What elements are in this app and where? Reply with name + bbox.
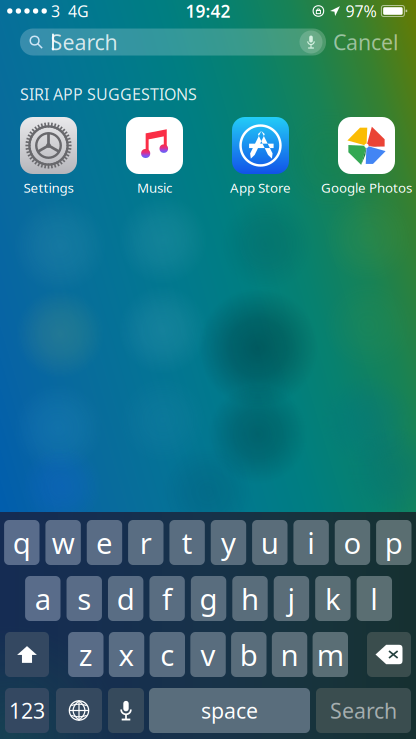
button[interactable]: v <box>190 632 226 677</box>
button[interactable]: 123 <box>5 688 49 733</box>
staticText: i <box>307 523 315 562</box>
staticText: Cancel <box>333 28 399 56</box>
staticText: n <box>281 635 299 674</box>
staticText: q <box>13 523 31 562</box>
staticText: s <box>77 579 91 618</box>
button[interactable]: y <box>211 520 246 565</box>
button[interactable]: x <box>109 632 144 677</box>
button[interactable]: n <box>272 632 307 677</box>
staticText: 19:42 <box>185 0 230 22</box>
staticText: Music <box>137 179 172 196</box>
staticText: z <box>79 635 93 674</box>
button[interactable]: i <box>293 520 329 565</box>
button[interactable]: h <box>232 576 268 621</box>
button[interactable]: Search <box>316 688 411 733</box>
button[interactable] <box>367 632 411 677</box>
button[interactable]: j <box>274 576 309 621</box>
staticText: Settings <box>23 179 73 196</box>
staticText: 4G <box>60 0 89 22</box>
button[interactable] <box>56 688 102 733</box>
staticText: Google Photos <box>321 179 412 196</box>
staticText: w <box>52 523 75 562</box>
button[interactable]: p <box>376 520 411 565</box>
staticText: 97% <box>345 0 376 22</box>
staticText: m <box>317 635 344 674</box>
staticText: e <box>96 523 113 562</box>
staticText: u <box>261 523 279 562</box>
staticText: h <box>241 579 259 618</box>
staticText: k <box>325 579 341 618</box>
staticText: a <box>35 579 51 618</box>
button[interactable]: q <box>4 520 39 565</box>
button[interactable]: Google Photos <box>306 117 416 209</box>
button[interactable]: a <box>25 576 60 621</box>
staticText: g <box>200 579 218 618</box>
button[interactable] <box>108 688 144 733</box>
button[interactable]: b <box>231 632 266 677</box>
staticText: space <box>201 696 258 725</box>
button[interactable]: Switch keyboard <box>56 688 102 733</box>
staticText: Search <box>330 696 397 725</box>
staticText: SIRI APP SUGGESTIONS <box>20 83 197 105</box>
button[interactable]: s <box>66 576 102 621</box>
staticText: d <box>117 579 135 618</box>
staticText: p <box>385 523 403 562</box>
button[interactable]: c <box>150 632 185 677</box>
button[interactable]: Dictate <box>108 688 144 733</box>
button[interactable]: f <box>149 576 185 621</box>
button[interactable]: App Store <box>200 117 320 209</box>
staticText: j <box>287 579 295 618</box>
staticText: x <box>118 635 134 674</box>
staticText: b <box>240 635 258 674</box>
button[interactable]: Cancel <box>333 28 399 55</box>
button[interactable]: Settings <box>0 117 108 209</box>
staticText: App Store <box>230 179 291 196</box>
staticText: r <box>140 523 152 562</box>
button[interactable]: u <box>252 520 287 565</box>
staticText: 3 <box>47 0 60 22</box>
button[interactable]: 123 <box>5 688 49 733</box>
button[interactable]: t <box>169 520 205 565</box>
button[interactable]: w <box>45 520 81 565</box>
button[interactable]: z <box>68 632 103 677</box>
staticText: 123 <box>9 696 45 725</box>
button[interactable]: o <box>335 520 370 565</box>
staticText: y <box>221 523 236 562</box>
button[interactable] <box>5 632 49 677</box>
staticText: c <box>160 635 174 674</box>
staticText: Search <box>50 28 117 56</box>
staticText: v <box>201 635 216 674</box>
button[interactable]: e <box>87 520 122 565</box>
button[interactable]: l <box>357 576 392 621</box>
button[interactable]: k <box>315 576 351 621</box>
button[interactable]: space <box>149 688 310 733</box>
button[interactable]: m <box>313 632 348 677</box>
button[interactable]: r <box>128 520 163 565</box>
staticText: t <box>182 523 193 562</box>
button[interactable]: Music <box>94 117 214 209</box>
staticText: o <box>343 523 361 562</box>
staticText: f <box>162 579 172 618</box>
staticText: l <box>370 579 378 618</box>
button[interactable]: d <box>108 576 143 621</box>
button[interactable]: g <box>191 576 226 621</box>
